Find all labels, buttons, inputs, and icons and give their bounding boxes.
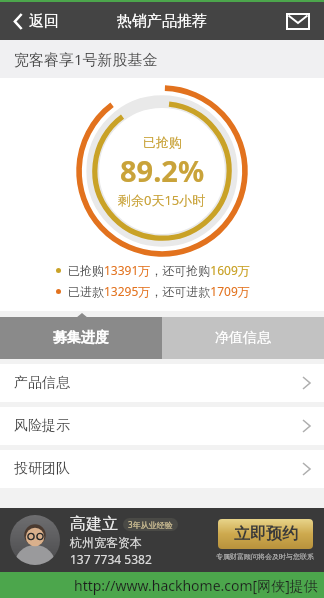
button[interactable]: Advisor photo: [10, 515, 60, 565]
staticText: 专属财富顾问将会及时与您联系: [216, 552, 314, 561]
button[interactable]: 返回: [10, 8, 63, 35]
staticText: 产品信息: [14, 374, 70, 392]
staticText: 净值信息: [215, 329, 271, 347]
button[interactable]: 立即预约: [218, 519, 313, 549]
staticText: 已抢购13391万，还可抢购1609万: [68, 262, 250, 278]
button[interactable]: 募集进度: [0, 317, 162, 359]
staticText: 剩余0天15小时: [118, 191, 206, 209]
staticText: 3年从业经验: [128, 519, 173, 530]
staticText: 热销产品推荐: [117, 12, 207, 31]
button[interactable]: 产品信息: [0, 364, 324, 402]
button[interactable]: 净值信息: [162, 317, 324, 359]
button[interactable]: Messages: [284, 7, 312, 35]
staticText: 立即预约: [234, 524, 298, 544]
staticText: 89.2%: [120, 151, 205, 190]
staticText: 杭州宽客资本: [70, 535, 142, 550]
staticText: 投研团队: [14, 460, 70, 478]
staticText: http://www.hackhome.com[网侠]提供: [74, 576, 318, 595]
staticText: 募集进度: [53, 329, 109, 347]
staticText: 已进款13295万，还可进款1709万: [68, 283, 250, 299]
staticText: 高建立: [70, 514, 118, 534]
staticText: 已抢购: [143, 134, 182, 150]
staticText: 宽客睿享1号新股基金: [14, 49, 158, 69]
staticText: 风险提示: [14, 417, 70, 435]
button[interactable]: 投研团队: [0, 450, 324, 488]
staticText: 返回: [29, 12, 59, 31]
button[interactable]: 风险提示: [0, 407, 324, 445]
staticText: 137 7734 5382: [70, 551, 152, 567]
